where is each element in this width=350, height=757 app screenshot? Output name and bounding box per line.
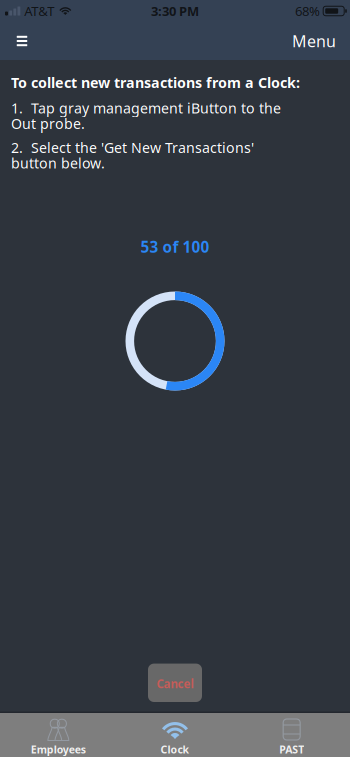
staticText: 53 of 100 — [140, 236, 209, 257]
staticText: Out probe. — [11, 114, 85, 133]
button[interactable]: PAST — [233, 713, 350, 757]
staticText: PAST — [279, 742, 304, 756]
staticText: Menu — [292, 30, 336, 52]
button[interactable]: Clock — [117, 713, 233, 757]
staticText: 2. Select the 'Get New Transactions' — [11, 138, 254, 157]
button[interactable]: Menu — [284, 22, 344, 60]
staticText: 1. Tap gray management iButton to the — [11, 98, 281, 117]
staticText: 68% — [295, 2, 320, 20]
staticText: button below. — [11, 153, 105, 173]
staticText: Cancel — [156, 676, 193, 692]
staticText: Employees — [31, 742, 86, 756]
staticText: 3:30 PM — [151, 2, 199, 20]
staticText: To collect new transactions from a Clock… — [11, 73, 300, 92]
staticText: Clock — [160, 742, 189, 756]
button[interactable]: Open navigation menu — [4, 22, 40, 60]
button[interactable]: Cancel — [148, 664, 202, 702]
staticText: AT&T — [24, 2, 54, 20]
button[interactable]: Employees — [0, 713, 117, 757]
